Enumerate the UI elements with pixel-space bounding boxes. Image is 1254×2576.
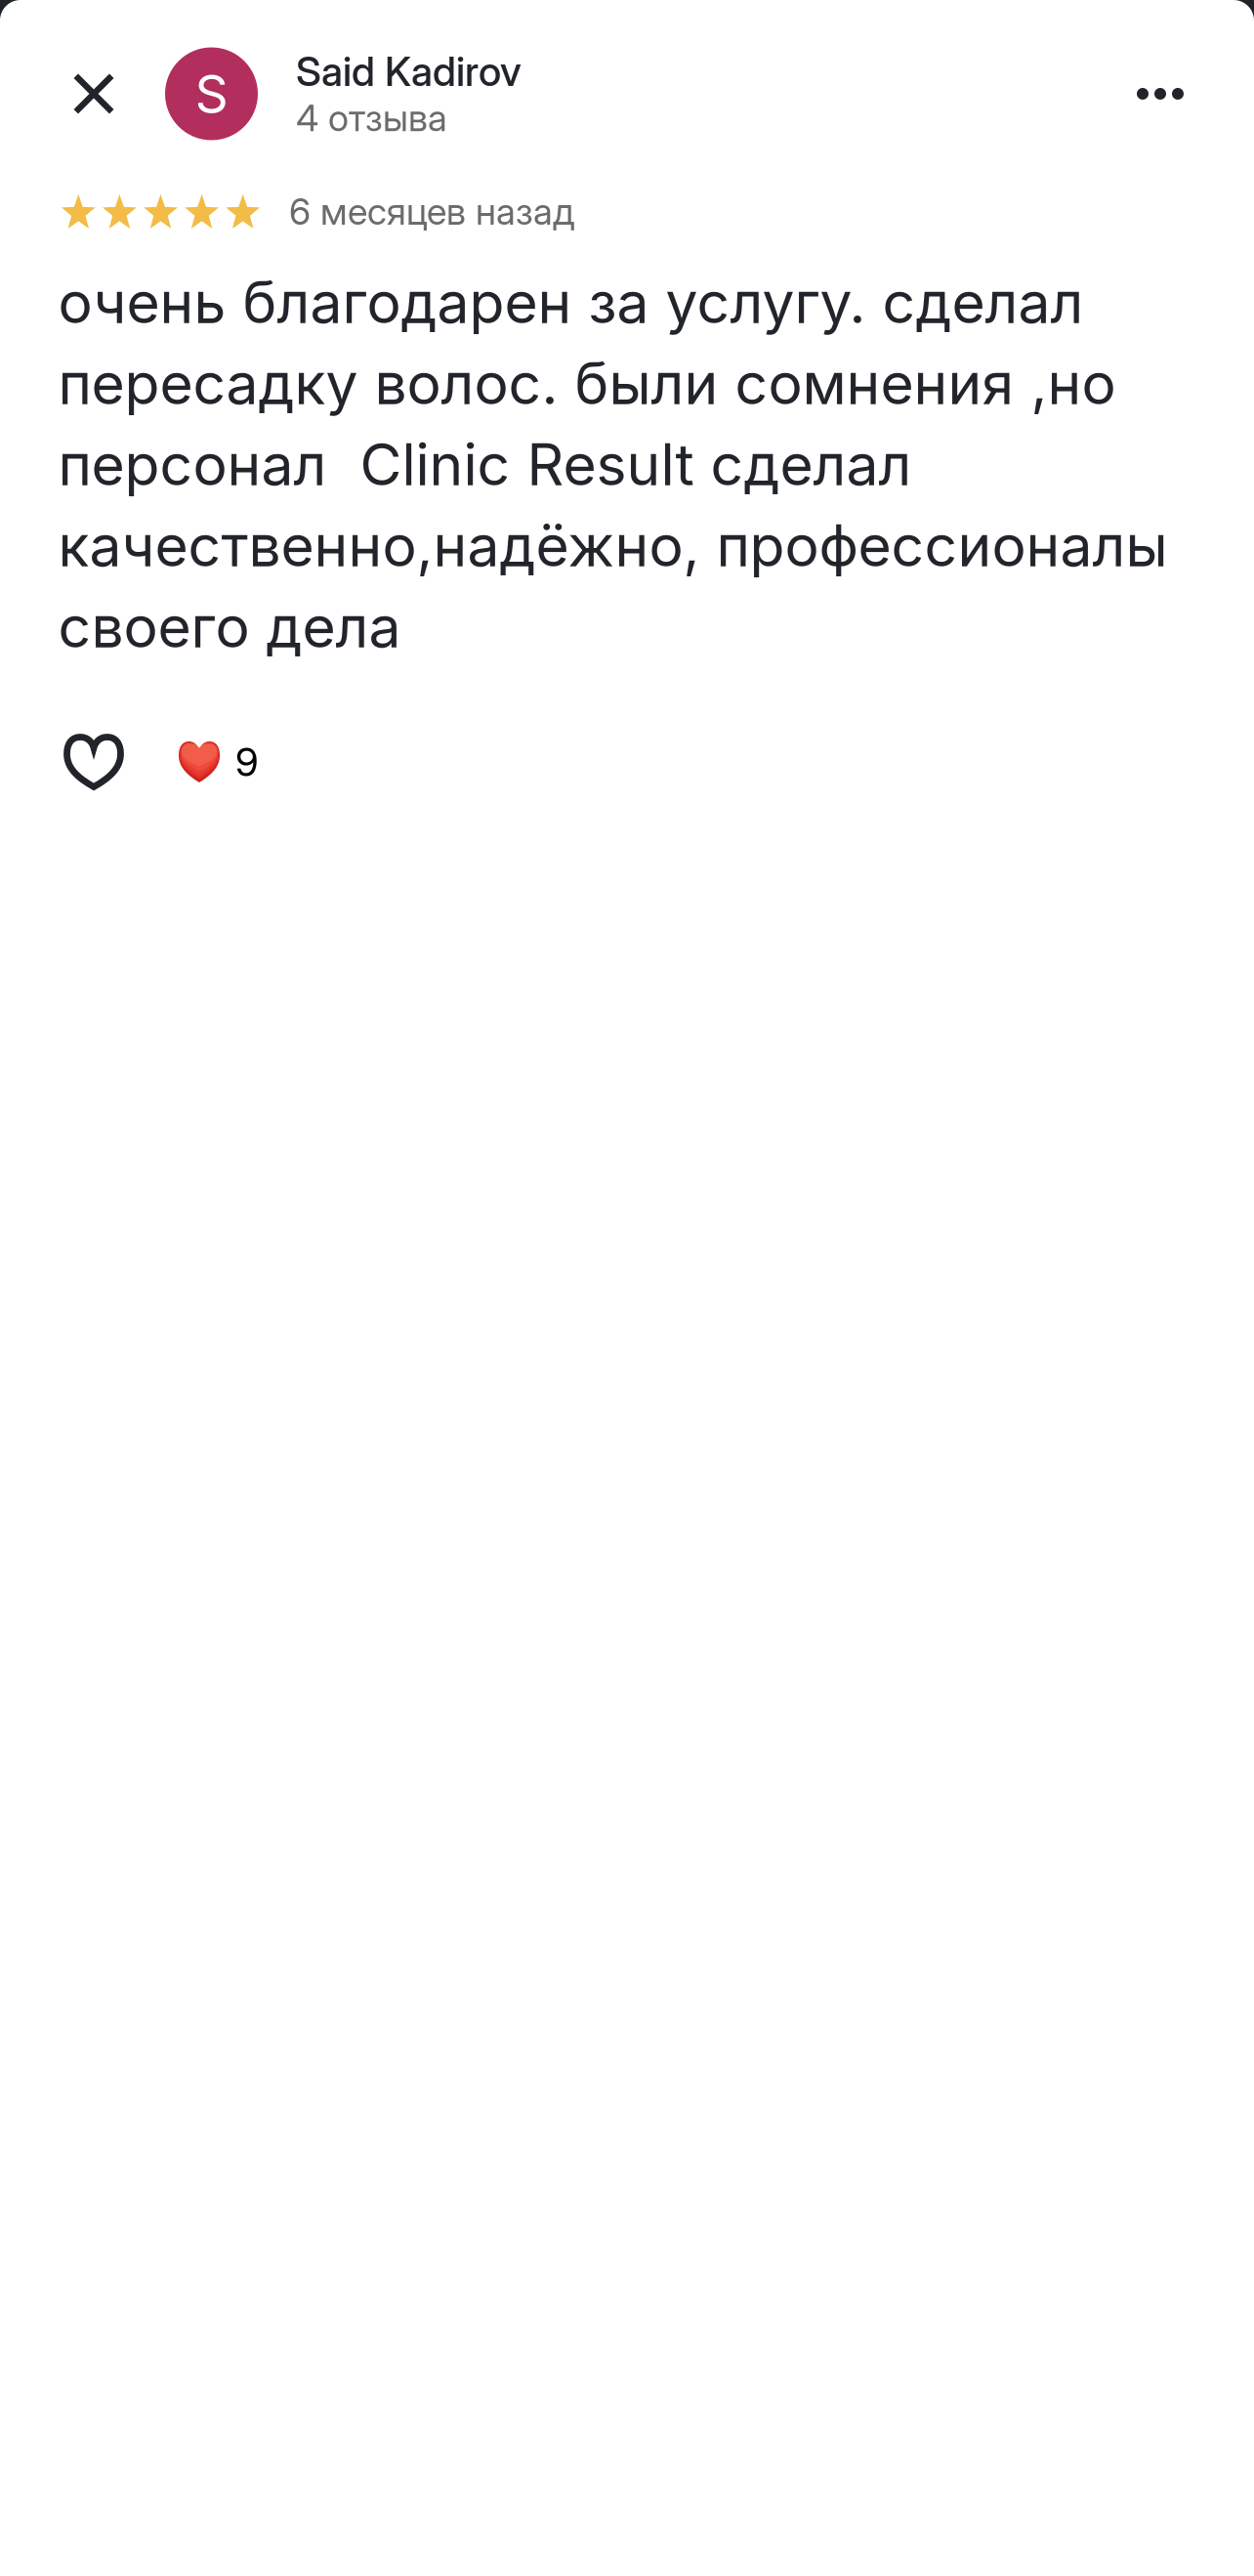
button[interactable]: More options	[1097, 39, 1224, 148]
staticText: 9	[235, 738, 259, 786]
button[interactable]: Like	[39, 721, 148, 803]
button[interactable]: S	[165, 39, 585, 148]
staticText: 6 месяцев назад	[289, 189, 574, 234]
staticText: очень благодарен за услугу. сделал перес…	[58, 268, 1168, 661]
staticText: 4 отзыва	[296, 96, 447, 140]
staticText: S	[195, 62, 228, 125]
button[interactable]: 9	[179, 721, 296, 803]
button[interactable]: Close	[39, 39, 148, 148]
staticText: Said Kadirov	[296, 47, 522, 96]
